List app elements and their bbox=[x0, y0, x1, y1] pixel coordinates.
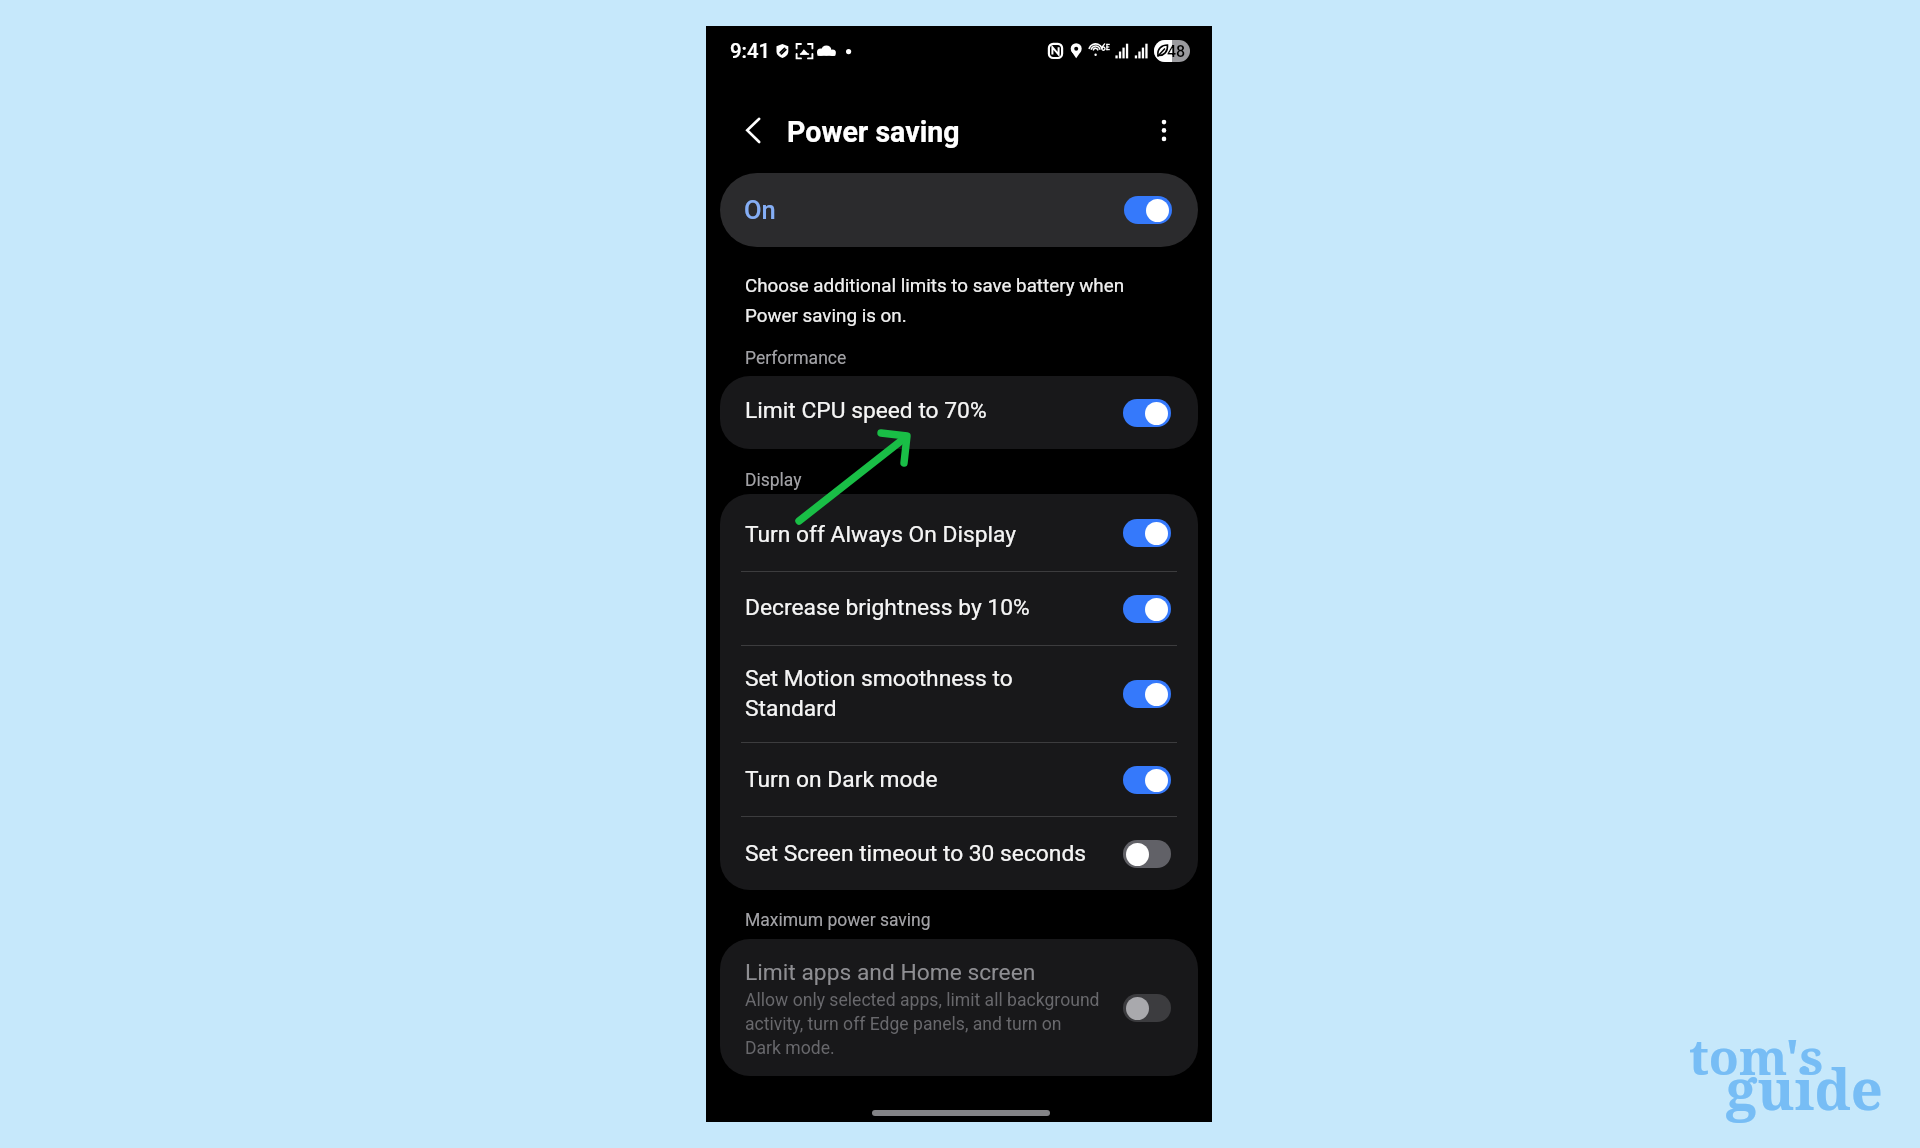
staticText: Performance bbox=[745, 348, 847, 369]
staticText: Turn off Always On Display bbox=[745, 521, 1123, 548]
button[interactable]: Set Motion smoothness to Standard bbox=[720, 646, 1198, 742]
button[interactable]: Switch on bbox=[1124, 196, 1172, 224]
staticText: Limit apps and Home screen bbox=[745, 959, 1036, 986]
button[interactable]: Switch on bbox=[1123, 766, 1171, 794]
staticText: 48 bbox=[1167, 42, 1186, 61]
staticText: Decrease brightness by 10% bbox=[745, 594, 1123, 621]
staticText: Set Screen timeout to 30 seconds bbox=[745, 840, 1123, 867]
staticText: Maximum power saving bbox=[745, 910, 931, 931]
button[interactable]: Switch on bbox=[1123, 399, 1171, 427]
staticText: tom's bbox=[1689, 1023, 1824, 1090]
button[interactable]: Turn on Dark mode bbox=[720, 743, 1198, 816]
button[interactable]: Switch on bbox=[1123, 519, 1171, 547]
staticText: On bbox=[744, 195, 776, 225]
button[interactable]: Switch off bbox=[1123, 840, 1171, 868]
button[interactable]: Decrease brightness by 10% bbox=[720, 572, 1198, 645]
button[interactable]: More options bbox=[1144, 110, 1184, 150]
staticText: Display bbox=[745, 470, 802, 491]
button[interactable]: Limit apps and Home screen bbox=[720, 939, 1198, 1076]
staticText: Limit CPU speed to 70% bbox=[745, 397, 987, 424]
button[interactable]: Switch on bbox=[1123, 595, 1171, 623]
staticText: Allow only selected apps, limit all back… bbox=[745, 990, 1100, 1058]
button[interactable]: Turn off Always On Display bbox=[720, 494, 1198, 571]
staticText: 9:41 bbox=[730, 39, 771, 63]
button[interactable]: On bbox=[720, 173, 1198, 247]
staticText: guide bbox=[1726, 1050, 1883, 1126]
button[interactable]: Limit CPU speed to 70% bbox=[720, 376, 1198, 449]
staticText: Choose additional limits to save battery… bbox=[745, 275, 1125, 327]
button[interactable]: Back bbox=[734, 108, 776, 152]
button[interactable]: Switch on bbox=[1123, 680, 1171, 708]
staticText: Turn on Dark mode bbox=[745, 766, 1123, 793]
button[interactable]: Switch off bbox=[1123, 994, 1171, 1022]
staticText: Set Motion smoothness to Standard bbox=[745, 665, 1123, 721]
staticText: Power saving bbox=[787, 115, 960, 149]
button[interactable]: Set Screen timeout to 30 seconds bbox=[720, 817, 1198, 890]
